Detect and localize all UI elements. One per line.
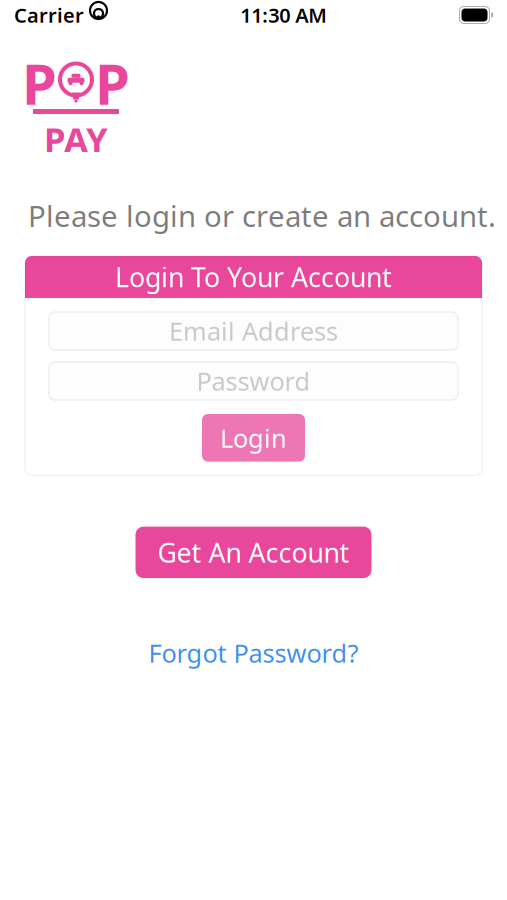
button[interactable]: Login To Your Account [25, 256, 482, 298]
button[interactable]: Get An Account [135, 527, 371, 578]
staticText: PAY [44, 116, 108, 162]
staticText: Login To Your Account [115, 259, 392, 295]
staticText: Email Address [169, 314, 338, 348]
staticText: Login [220, 421, 287, 455]
button[interactable]: Email Address [49, 312, 458, 350]
staticText: 11:30 AM [240, 2, 327, 28]
staticText: Get An Account [157, 535, 349, 570]
staticText: Forgot Password? [148, 636, 358, 670]
staticText: P [22, 46, 57, 120]
staticText: Carrier [14, 2, 84, 28]
staticText: Please login or create an account. [28, 196, 496, 235]
staticText: Password [196, 364, 310, 398]
button[interactable]: Forgot Password? [138, 630, 368, 676]
button[interactable]: Password [49, 362, 458, 400]
button[interactable]: Login [202, 414, 305, 462]
staticText: P [95, 46, 130, 120]
